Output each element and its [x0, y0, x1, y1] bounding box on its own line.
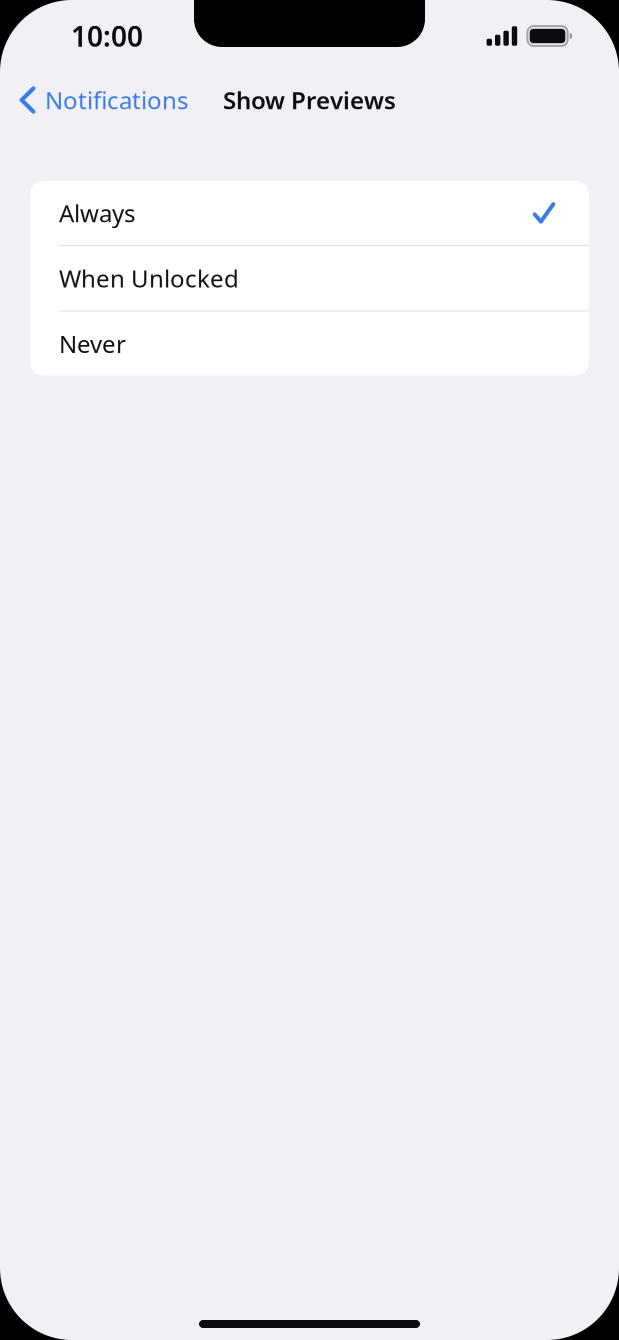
button[interactable]: Back to Notifications: [0, 72, 198, 128]
staticText: Notifications: [45, 84, 188, 116]
button[interactable]: Always: [30, 181, 589, 245]
staticText: Never: [59, 328, 126, 360]
button[interactable]: When Unlocked: [30, 246, 589, 310]
staticText: Show Previews: [223, 84, 396, 116]
button[interactable]: Never: [30, 312, 589, 376]
staticText: Always: [59, 197, 135, 229]
staticText: When Unlocked: [59, 262, 239, 294]
staticText: 10:00: [71, 17, 143, 55]
